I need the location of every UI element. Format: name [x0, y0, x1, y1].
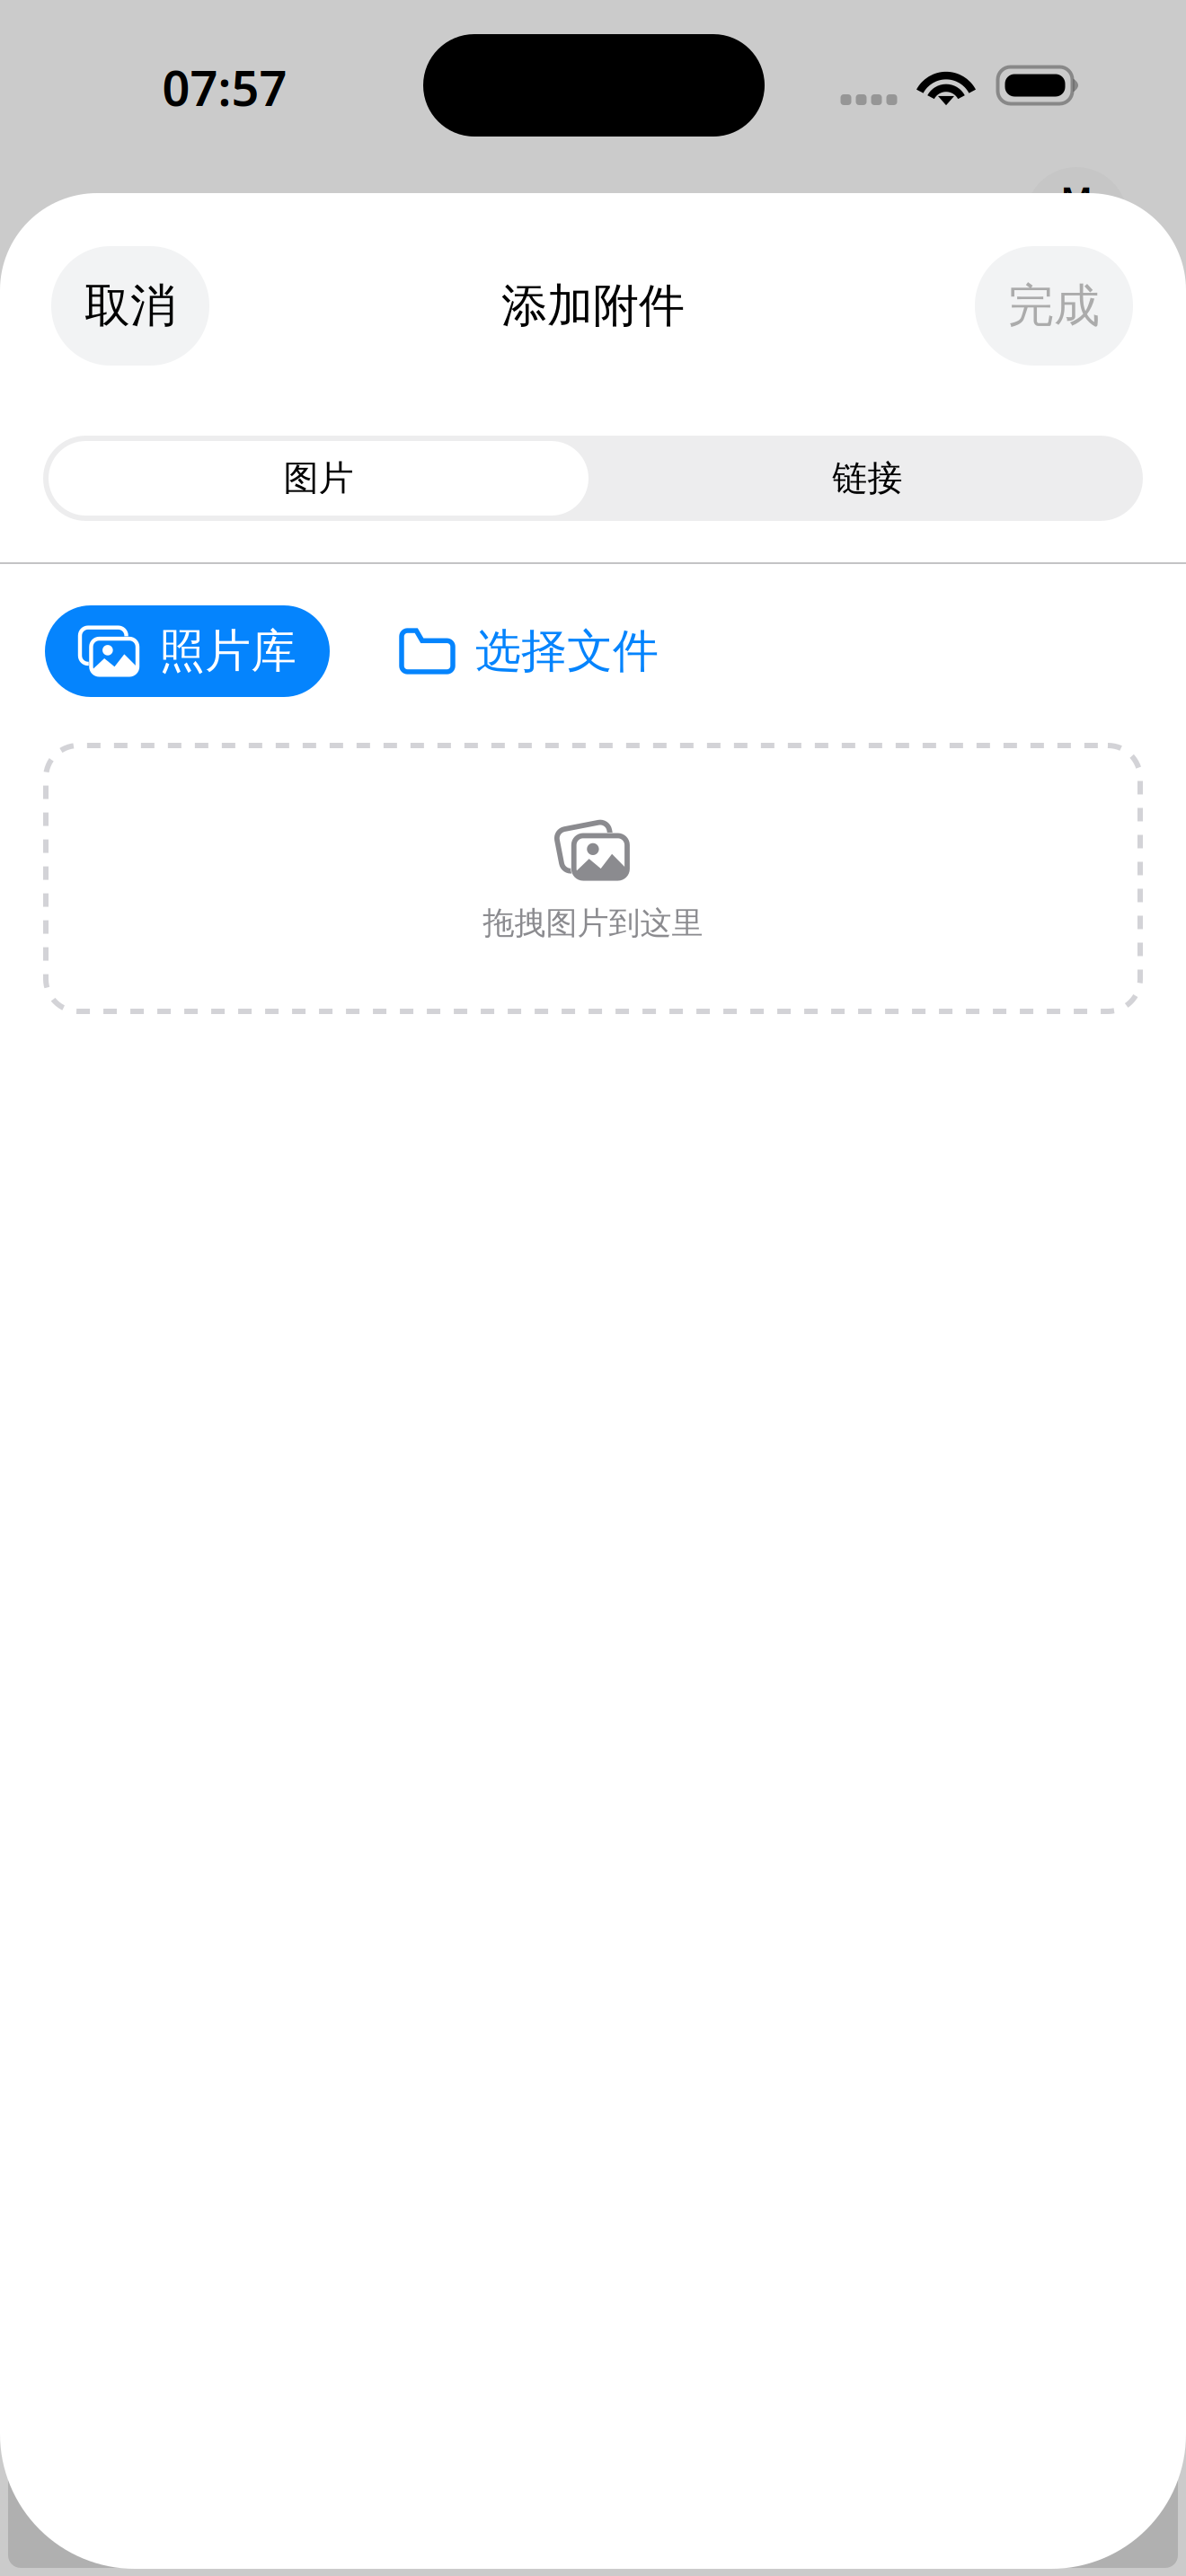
- button[interactable]: 图片: [49, 441, 589, 516]
- button[interactable]: 照片库: [45, 605, 330, 697]
- button[interactable]: 取消: [51, 246, 209, 366]
- staticText: 添加附件: [501, 277, 685, 335]
- staticText: 链接: [832, 456, 903, 500]
- staticText: 照片库: [159, 622, 296, 680]
- staticText: 07:57: [162, 54, 287, 120]
- button[interactable]: 链接: [597, 441, 1137, 516]
- staticText: M.: [1061, 175, 1101, 222]
- button[interactable]: 选择文件: [402, 605, 659, 697]
- staticText: 拖拽图片到这里: [483, 903, 703, 943]
- staticText: 完成: [1008, 277, 1100, 335]
- staticText: 选择文件: [475, 622, 659, 680]
- staticText: 取消: [84, 277, 176, 335]
- button[interactable]: 完成: [975, 246, 1133, 366]
- staticText: 图片: [283, 456, 354, 500]
